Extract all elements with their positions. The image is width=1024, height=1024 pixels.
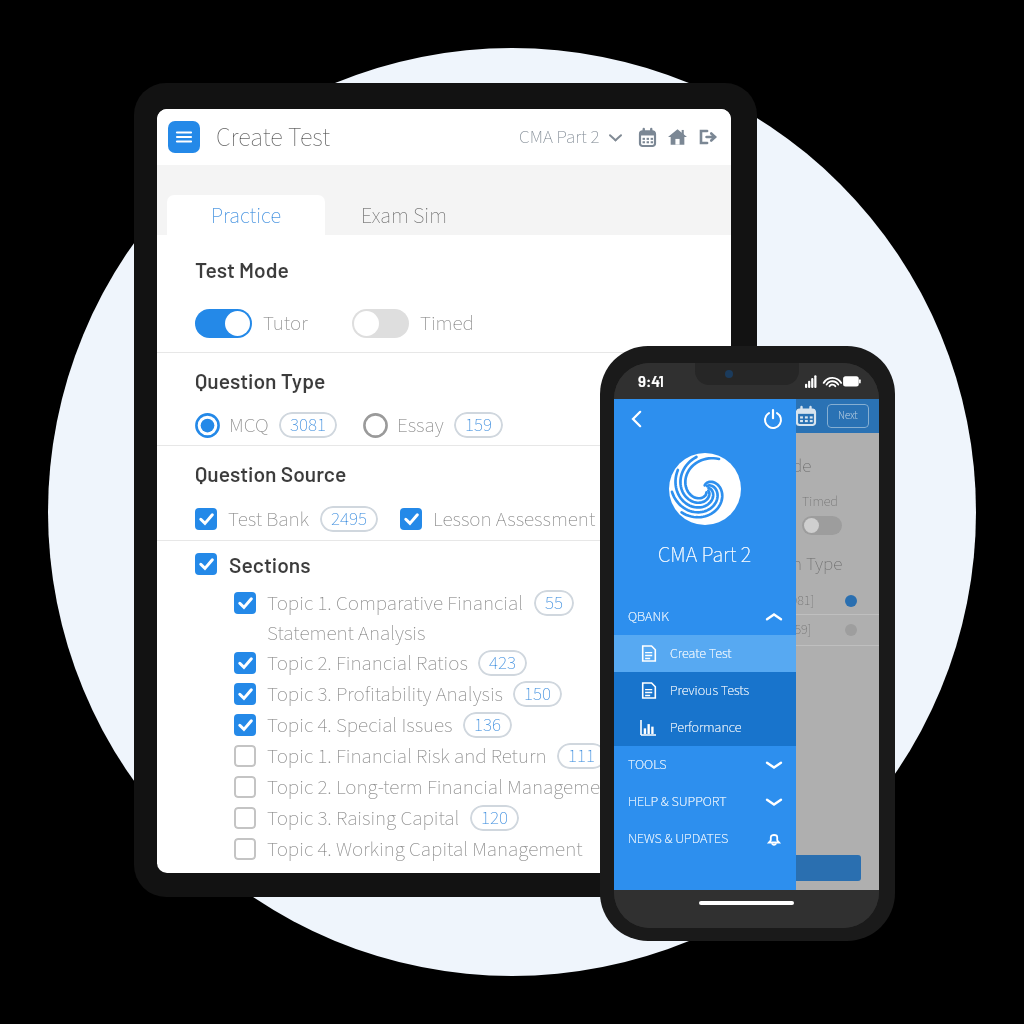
staticText: Topic 4. Special Issues bbox=[267, 710, 453, 740]
staticText: 159 bbox=[465, 412, 492, 438]
staticText: Topic 1. Financial Risk and Return bbox=[267, 741, 547, 771]
staticText: 55 bbox=[545, 590, 563, 616]
staticText: Create Test bbox=[670, 644, 732, 664]
staticText: Statement Analysis bbox=[267, 618, 426, 647]
button[interactable]: Checked bbox=[234, 592, 256, 614]
button[interactable]: Selected option bbox=[195, 413, 220, 438]
staticText: Topic 2. Financial Ratios bbox=[267, 648, 468, 678]
staticText: 423 bbox=[489, 650, 516, 676]
button[interactable]: Unchecked bbox=[234, 838, 256, 860]
staticText: 120 bbox=[481, 805, 508, 831]
button[interactable]: Open navigation menu bbox=[168, 121, 200, 153]
button[interactable]: Unchecked bbox=[234, 807, 256, 829]
button[interactable]: Checked bbox=[195, 553, 217, 575]
staticText: 3081 bbox=[290, 412, 326, 438]
staticText: Sections bbox=[229, 552, 311, 577]
staticText: Essay bbox=[397, 410, 444, 440]
staticText: Question Source bbox=[195, 461, 347, 486]
button[interactable]: Unchecked bbox=[234, 745, 256, 767]
button[interactable]: Timed mode off bbox=[352, 309, 409, 338]
button[interactable]: Option bbox=[363, 413, 388, 438]
staticText: Exam Sim bbox=[361, 200, 447, 231]
staticText: Test Bank bbox=[228, 504, 310, 534]
staticText: Topic 3. Raising Capital bbox=[267, 803, 460, 833]
staticText: Next bbox=[838, 408, 858, 424]
staticText: CMA Part 2 bbox=[519, 124, 600, 151]
staticText: 150 bbox=[524, 681, 551, 707]
button[interactable]: Checked bbox=[400, 508, 422, 530]
button[interactable]: Home bbox=[665, 125, 689, 149]
staticText: [159] bbox=[784, 620, 812, 640]
staticText: Topic 3. Profitability Analysis bbox=[267, 679, 503, 709]
staticText: 111 bbox=[568, 743, 595, 769]
staticText: Topic 2. Long-term Financial Management bbox=[267, 772, 618, 802]
button[interactable]: Unchecked bbox=[234, 776, 256, 798]
button[interactable]: Exam Sim bbox=[325, 195, 483, 235]
button[interactable]: Back bbox=[627, 409, 647, 429]
staticText: Create Test bbox=[216, 119, 331, 156]
button[interactable]: Generate test bbox=[764, 855, 861, 881]
button[interactable]: HELP & SUPPORT bbox=[628, 783, 782, 820]
staticText: Lesson Assessment bbox=[433, 504, 596, 534]
staticText: Question Type bbox=[195, 368, 326, 393]
button[interactable]: Log out bbox=[696, 125, 720, 149]
staticText: QBANK bbox=[628, 607, 669, 627]
button[interactable]: Practice bbox=[167, 195, 325, 235]
staticText: Tutor bbox=[263, 308, 308, 338]
button[interactable]: QBANK bbox=[628, 598, 782, 635]
staticText: 2495 bbox=[331, 506, 367, 532]
button[interactable]: NEWS & UPDATES bbox=[628, 820, 782, 857]
staticText: 9:41 bbox=[638, 372, 664, 390]
button[interactable]: Tutor mode on bbox=[195, 309, 252, 338]
staticText: HELP & SUPPORT bbox=[628, 792, 727, 812]
button[interactable]: Checked bbox=[234, 714, 256, 736]
staticText: Timed bbox=[420, 308, 474, 338]
staticText: Previous Tests bbox=[670, 681, 749, 701]
button[interactable]: Checked bbox=[195, 508, 217, 530]
staticText: Topic 4. Working Capital Management bbox=[267, 834, 583, 864]
staticText: NEWS & UPDATES bbox=[628, 829, 729, 849]
button[interactable]: CMA Part 2 bbox=[515, 120, 626, 155]
button[interactable]: Create Test bbox=[640, 635, 796, 672]
staticText: 136 bbox=[474, 712, 501, 738]
staticText: CMA Part 2 bbox=[658, 539, 752, 570]
button[interactable]: Next bbox=[827, 404, 869, 428]
button[interactable]: Performance bbox=[640, 709, 796, 746]
staticText: Test Mode bbox=[195, 257, 289, 282]
staticText: ode bbox=[782, 453, 812, 480]
button[interactable]: Calendar bbox=[635, 125, 659, 149]
staticText: 3081] bbox=[784, 591, 815, 611]
staticText: TOOLS bbox=[628, 755, 667, 775]
staticText: Topic 1. Comparative Financial bbox=[267, 588, 524, 618]
staticText: Timed bbox=[802, 492, 838, 512]
staticText: MCQ bbox=[229, 410, 269, 440]
staticText: on Type bbox=[782, 551, 843, 578]
button[interactable]: TOOLS bbox=[628, 746, 782, 783]
button[interactable]: Checked bbox=[234, 652, 256, 674]
button[interactable]: Power / sign out bbox=[763, 409, 783, 429]
button[interactable]: Checked bbox=[234, 683, 256, 705]
button[interactable]: Previous Tests bbox=[640, 672, 796, 709]
staticText: Performance bbox=[670, 718, 742, 738]
staticText: Practice bbox=[211, 200, 282, 231]
